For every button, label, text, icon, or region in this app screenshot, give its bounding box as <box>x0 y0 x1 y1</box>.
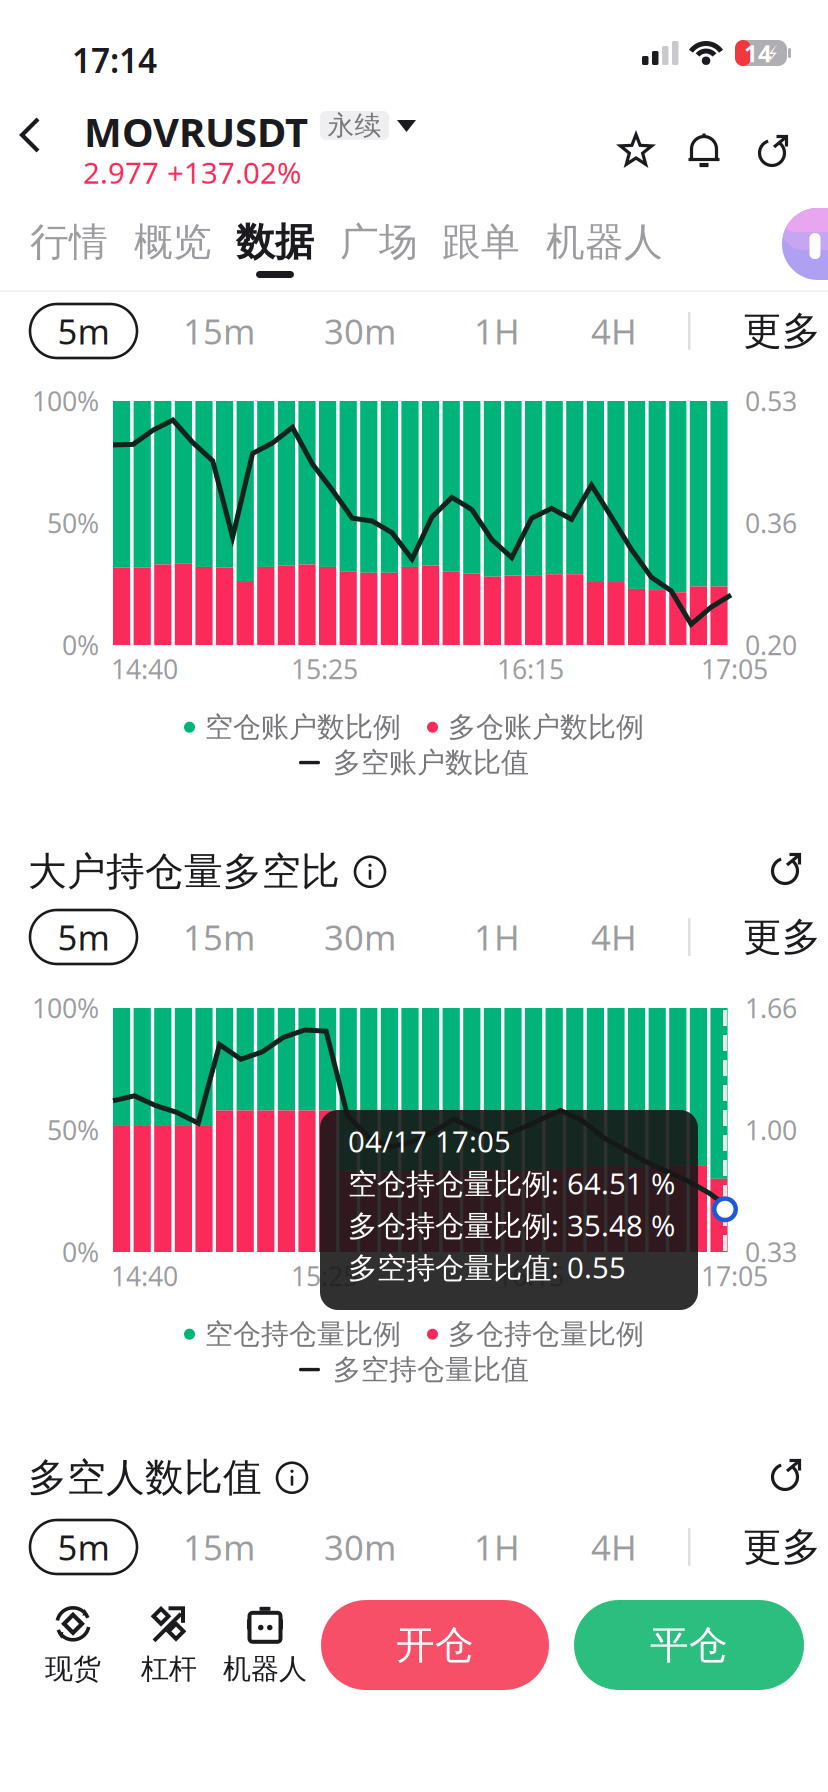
staticText: 开仓 <box>396 1621 474 1669</box>
button[interactable]: 现货 <box>28 1601 118 1689</box>
staticText: 2.977 +137.02% <box>83 153 301 192</box>
staticText: 0% <box>62 627 99 663</box>
staticText: 1H <box>474 914 520 960</box>
staticText: 100% <box>32 383 99 419</box>
staticText: 04/17 17:05 <box>348 1121 511 1160</box>
staticText: 50% <box>47 1112 99 1148</box>
staticText: 数据 <box>236 218 314 266</box>
button[interactable]: 行情 <box>30 212 108 286</box>
button[interactable]: 15m <box>183 910 263 964</box>
staticText: 5m <box>57 1524 109 1570</box>
staticText: 概览 <box>134 218 212 266</box>
button[interactable]: 跟单 <box>442 212 520 286</box>
button[interactable]: 杠杆 <box>124 1601 214 1689</box>
staticText: 0% <box>62 1234 99 1270</box>
button[interactable]: 机器人 <box>218 1601 312 1689</box>
staticText: 4H <box>591 914 637 960</box>
staticText: 空仓账户数比例 <box>205 710 401 744</box>
staticText: 多空账户数比值 <box>333 745 529 780</box>
staticText: 30m <box>324 914 396 960</box>
staticText: 50% <box>47 505 99 541</box>
button[interactable]: 30m <box>324 304 404 358</box>
button[interactable]: Favorite <box>619 133 653 169</box>
staticText: 更多 <box>743 913 821 961</box>
staticText: 1.00 <box>745 1112 797 1148</box>
button[interactable]: 5m <box>30 304 137 358</box>
staticText: 0.20 <box>745 627 797 663</box>
button[interactable]: 更多 <box>743 304 828 358</box>
button[interactable]: 15m <box>183 304 263 358</box>
staticText: 0.36 <box>745 505 797 541</box>
staticText: 多空持仓量比值: 0.55 <box>348 1247 626 1286</box>
staticText: 15:25 <box>291 651 358 687</box>
staticText: 更多 <box>743 307 821 355</box>
staticText: 16:15 <box>497 651 564 687</box>
staticText: 多空持仓量比值 <box>333 1352 529 1387</box>
button[interactable]: Back <box>3 109 63 169</box>
button[interactable]: 30m <box>324 910 404 964</box>
staticText: 杠杆 <box>141 1652 197 1686</box>
staticText: 14:40 <box>111 651 178 687</box>
staticText: 机器人 <box>546 218 663 266</box>
button[interactable]: 4H <box>591 1520 671 1574</box>
button[interactable]: 4H <box>591 910 671 964</box>
staticText: 广场 <box>340 218 418 266</box>
staticText: 15m <box>183 914 255 960</box>
button[interactable]: 4H <box>591 304 671 358</box>
button[interactable]: 开仓 <box>321 1600 549 1690</box>
button[interactable]: Share <box>757 134 789 170</box>
staticText: 17:05 <box>701 1258 768 1294</box>
staticText: 1H <box>474 1524 520 1570</box>
staticText: 14:40 <box>111 1258 178 1294</box>
staticText: 30m <box>324 1524 396 1570</box>
staticText: 100% <box>32 990 99 1026</box>
button[interactable]: Expand chart <box>770 1458 802 1494</box>
staticText: 现货 <box>45 1652 101 1686</box>
staticText: 15:25 <box>291 1258 358 1294</box>
staticText: 永续 <box>327 109 381 142</box>
button[interactable]: 5m <box>30 1520 137 1574</box>
staticText: 15m <box>183 308 255 354</box>
staticText: 空仓持仓量比例: 64.51 % <box>348 1163 675 1202</box>
button[interactable]: AI assistant <box>782 208 828 280</box>
staticText: 更多 <box>743 1523 821 1571</box>
staticText: 15m <box>183 1524 255 1570</box>
button[interactable]: 15m <box>183 1520 263 1574</box>
button[interactable]: 更多 <box>743 910 828 964</box>
button[interactable]: 数据 <box>236 212 314 286</box>
button[interactable]: 平仓 <box>574 1600 804 1690</box>
button[interactable]: 广场 <box>340 212 418 286</box>
staticText: 多仓账户数比例 <box>448 710 644 744</box>
staticText: 跟单 <box>442 218 520 266</box>
staticText: 5m <box>57 308 109 354</box>
staticText: 4H <box>591 308 637 354</box>
staticText: 机器人 <box>223 1652 307 1686</box>
staticText: 4H <box>591 1524 637 1570</box>
staticText: 17:14 <box>72 38 157 82</box>
staticText: 0.33 <box>745 1234 797 1270</box>
staticText: MOVRUSDT <box>84 105 308 158</box>
button[interactable]: 1H <box>474 304 554 358</box>
staticText: 30m <box>324 308 396 354</box>
staticText: 平仓 <box>650 1621 728 1669</box>
staticText: 16:15 <box>497 1258 564 1294</box>
button[interactable]: 1H <box>474 1520 554 1574</box>
staticText: 行情 <box>30 218 108 266</box>
staticText: 0.53 <box>745 383 797 419</box>
staticText: 多空人数比值 <box>28 1454 262 1501</box>
staticText: 17:05 <box>701 651 768 687</box>
button[interactable]: 1H <box>474 910 554 964</box>
staticText: 多仓持仓量比例: 35.48 % <box>348 1205 675 1244</box>
button[interactable]: 机器人 <box>546 212 663 286</box>
staticText: 多仓持仓量比例 <box>448 1317 644 1351</box>
button[interactable]: 30m <box>324 1520 404 1574</box>
staticText: 5m <box>57 914 109 960</box>
staticText: 1.66 <box>745 990 797 1026</box>
staticText: 空仓持仓量比例 <box>205 1317 401 1351</box>
button[interactable]: 5m <box>30 910 137 964</box>
button[interactable]: Price alerts <box>688 133 720 169</box>
button[interactable]: Expand chart <box>770 852 802 888</box>
button[interactable]: 概览 <box>134 212 212 286</box>
staticText: 14 <box>744 37 772 69</box>
button[interactable]: 更多 <box>743 1520 828 1574</box>
